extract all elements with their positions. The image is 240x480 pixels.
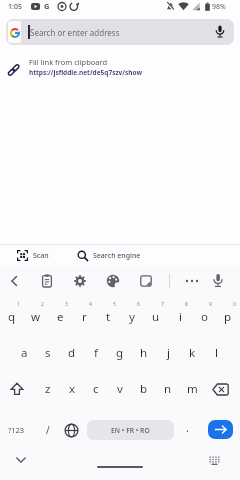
staticText: 1 xyxy=(17,301,20,308)
staticText: o xyxy=(201,309,208,325)
button[interactable]: s xyxy=(36,339,60,367)
staticText: k xyxy=(189,345,196,361)
staticText: 4 xyxy=(89,301,92,308)
staticText: EN • FR • RO xyxy=(111,426,150,435)
button[interactable]: g xyxy=(108,339,132,367)
button[interactable]: / xyxy=(38,419,58,441)
button[interactable] xyxy=(136,271,156,291)
button[interactable]: v xyxy=(108,375,132,403)
button[interactable] xyxy=(4,375,30,403)
staticText: b xyxy=(140,381,148,397)
button[interactable]: e xyxy=(48,303,72,331)
button[interactable]: d xyxy=(60,339,84,367)
button[interactable]: Search or enter address xyxy=(6,19,234,45)
staticText: g xyxy=(116,345,124,361)
button[interactable]: f xyxy=(84,339,108,367)
staticText: 5 xyxy=(113,301,116,308)
staticText: r xyxy=(82,309,87,325)
staticText: t xyxy=(106,309,111,325)
button[interactable]: p xyxy=(216,303,240,331)
staticText: / xyxy=(46,423,50,437)
staticText: i xyxy=(179,309,182,325)
staticText: 3 xyxy=(65,301,68,308)
button[interactable] xyxy=(37,271,57,291)
staticText: s xyxy=(45,345,51,361)
staticText: Search or enter address xyxy=(30,27,120,38)
staticText: 9 xyxy=(209,301,212,308)
staticText: q xyxy=(8,309,16,325)
staticText: j xyxy=(167,345,170,361)
staticText: ?123 xyxy=(8,425,25,435)
staticText: w xyxy=(31,309,41,325)
staticText: 98% xyxy=(212,2,226,12)
button[interactable]: EN • FR • RO xyxy=(87,420,174,440)
button[interactable]: r xyxy=(72,303,96,331)
button[interactable]: Fill link from clipboard xyxy=(0,52,240,84)
staticText: l xyxy=(215,345,218,361)
button[interactable]: ?123 xyxy=(2,419,30,441)
button[interactable]: o xyxy=(192,303,216,331)
button[interactable]: Search engine xyxy=(70,246,160,265)
staticText: p xyxy=(224,309,232,325)
button[interactable] xyxy=(202,452,226,470)
staticText: Fill link from clipboard xyxy=(29,57,108,67)
staticText: 2 xyxy=(41,301,44,308)
button[interactable]: k xyxy=(180,339,204,367)
staticText: 8 xyxy=(185,301,188,308)
staticText: y xyxy=(129,309,135,325)
button[interactable]: Scan xyxy=(10,246,65,265)
button[interactable] xyxy=(60,419,82,441)
button[interactable]: j xyxy=(156,339,180,367)
staticText: u xyxy=(152,309,160,325)
staticText: x xyxy=(69,381,76,397)
button[interactable]: x xyxy=(60,375,84,403)
staticText: n xyxy=(164,381,172,397)
staticText: . xyxy=(186,421,189,435)
button[interactable] xyxy=(10,452,32,468)
button[interactable] xyxy=(206,375,234,403)
button[interactable]: a xyxy=(12,339,36,367)
button[interactable]: m xyxy=(180,375,204,403)
button[interactable]: q xyxy=(0,303,24,331)
button[interactable] xyxy=(70,271,90,291)
staticText: v xyxy=(117,381,123,397)
button[interactable]: . xyxy=(179,417,195,439)
staticText: Scan xyxy=(33,251,49,261)
button[interactable] xyxy=(103,271,123,291)
button[interactable] xyxy=(208,271,228,291)
staticText: 0 xyxy=(233,301,236,308)
staticText: Search engine xyxy=(93,251,141,261)
button[interactable]: n xyxy=(156,375,180,403)
staticText: h xyxy=(140,345,148,361)
button[interactable]: z xyxy=(36,375,60,403)
staticText: 1:05 xyxy=(8,2,22,12)
button[interactable]: h xyxy=(132,339,156,367)
staticText: z xyxy=(45,381,51,397)
button[interactable]: y xyxy=(120,303,144,331)
staticText: G xyxy=(44,1,50,11)
staticText: 7 xyxy=(161,301,164,308)
staticText: m xyxy=(187,381,198,397)
staticText: https://jsfiddle.net/de5q7szv/show xyxy=(29,68,142,77)
staticText: a xyxy=(21,345,28,361)
button[interactable]: w xyxy=(24,303,48,331)
staticText: c xyxy=(93,381,99,397)
staticText: f xyxy=(94,345,98,361)
button[interactable]: b xyxy=(132,375,156,403)
button[interactable] xyxy=(182,271,202,291)
staticText: e xyxy=(57,309,64,325)
button[interactable] xyxy=(4,271,24,291)
staticText: d xyxy=(68,345,76,361)
button[interactable]: i xyxy=(168,303,192,331)
button[interactable]: u xyxy=(144,303,168,331)
button[interactable]: l xyxy=(204,339,228,367)
button[interactable]: t xyxy=(96,303,120,331)
staticText: 6 xyxy=(137,301,140,308)
button[interactable] xyxy=(208,420,233,439)
button[interactable]: c xyxy=(84,375,108,403)
